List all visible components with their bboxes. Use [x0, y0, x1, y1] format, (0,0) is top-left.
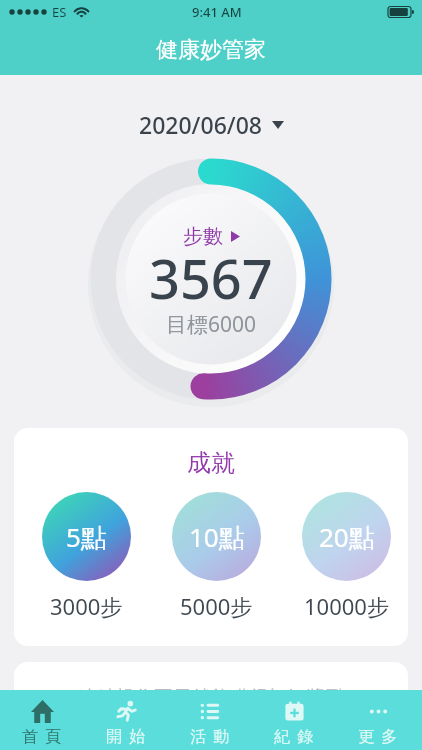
staticText: 步數	[183, 224, 223, 249]
staticText: 健康妙管家	[156, 36, 266, 64]
staticText: 20點	[319, 519, 375, 555]
staticText: 3000步	[50, 591, 123, 621]
button[interactable]: 活 動	[168, 690, 252, 750]
staticText: 10000步	[304, 591, 389, 621]
staticText: 首 頁	[22, 725, 63, 747]
button[interactable]: 更 多	[336, 690, 420, 750]
button[interactable]: 開 始	[84, 690, 168, 750]
button[interactable]: 20點	[302, 492, 391, 621]
button[interactable]: 10點	[172, 492, 261, 621]
button[interactable]: 紀 錄	[252, 690, 336, 750]
staticText: 紀 錄	[274, 725, 315, 747]
button[interactable]: 首 頁	[0, 690, 84, 750]
button[interactable]: 2020/06/08	[0, 109, 422, 139]
staticText: 目標6000	[166, 310, 257, 339]
button[interactable]: 5點	[42, 492, 131, 621]
staticText: 更 多	[358, 725, 399, 747]
button[interactable]: 連續操作五天就能獲得打氣獎勵	[14, 662, 408, 690]
staticText: 2020/06/08	[139, 109, 262, 139]
staticText: ES	[52, 3, 67, 21]
button[interactable]: 步數	[183, 224, 240, 249]
staticText: 10點	[189, 519, 245, 555]
staticText: 5000步	[180, 591, 253, 621]
staticText: 成就	[187, 448, 235, 478]
staticText: 開 始	[106, 725, 147, 747]
staticText: 活 動	[190, 725, 231, 747]
staticText: 連續操作五天就能獲得打氣獎勵	[78, 686, 344, 690]
staticText: 3567	[149, 241, 273, 315]
staticText: 9:41 AM	[192, 3, 242, 21]
staticText: 5點	[66, 519, 107, 555]
